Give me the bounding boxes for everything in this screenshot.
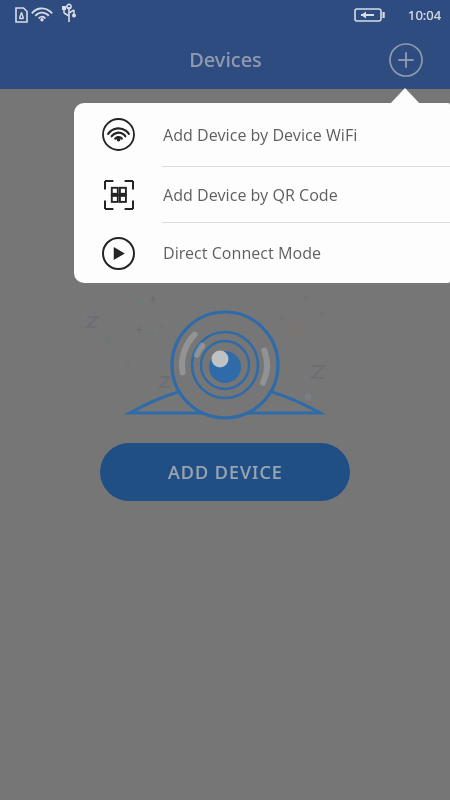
button[interactable]: ADD DEVICE xyxy=(100,443,350,501)
button[interactable]: Add Device by QR Code xyxy=(74,167,450,222)
staticText: Add Device by Device WiFi xyxy=(163,124,358,146)
button[interactable]: Add device xyxy=(386,40,426,80)
staticText: Direct Connect Mode xyxy=(163,242,322,264)
staticText: Add Device by QR Code xyxy=(163,184,338,206)
button[interactable]: Add Device by Device WiFi xyxy=(74,103,450,166)
staticText: 10:04 xyxy=(408,6,442,24)
button[interactable]: Direct Connect Mode xyxy=(74,223,450,283)
staticText: Devices xyxy=(189,46,262,73)
staticText: ADD DEVICE xyxy=(168,460,283,485)
